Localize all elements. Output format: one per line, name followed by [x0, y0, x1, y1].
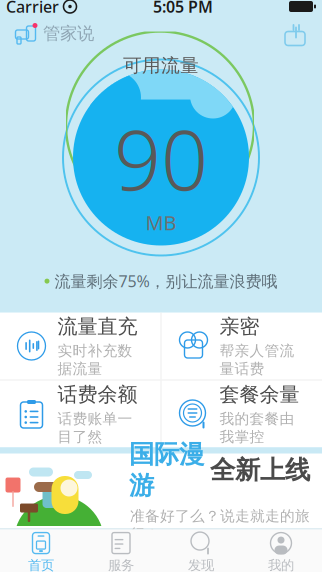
staticText: 服务 — [108, 557, 134, 572]
button[interactable]: 话费余额 — [0, 380, 160, 447]
staticText: 话费余额 — [57, 382, 137, 407]
staticText: 可用流量 — [123, 54, 199, 77]
button[interactable]: Share — [274, 18, 316, 48]
staticText: 流量直充 — [57, 314, 137, 339]
staticText: 亲密 — [219, 314, 259, 339]
staticText: 话费账单一目了然 — [57, 410, 132, 446]
button[interactable]: 发现 — [161, 529, 241, 572]
staticText: MB — [145, 209, 176, 236]
button[interactable]: 国际漫游 — [0, 453, 322, 528]
staticText: 首页 — [28, 557, 54, 572]
button[interactable]: 我的 — [241, 529, 321, 572]
staticText: Carrier — [6, 0, 59, 17]
staticText: 90 — [114, 103, 208, 213]
button[interactable]: 管家说 — [6, 18, 102, 48]
staticText: 管家说 — [43, 23, 94, 44]
staticText: 全新上线 — [210, 454, 310, 485]
button[interactable]: 首页 — [1, 529, 81, 572]
staticText — [59, 0, 63, 17]
button[interactable]: 亲密 — [161, 312, 322, 379]
staticText: 我的套餐由我掌控 — [219, 410, 294, 446]
button[interactable]: 服务 — [81, 529, 161, 572]
staticText: 帮亲人管流量话费 — [219, 342, 294, 378]
staticText: 准备好了么？说走就走的旅行！ — [130, 507, 310, 543]
staticText: 我的 — [268, 557, 294, 572]
staticText: 5:05 PM — [153, 0, 213, 17]
button[interactable]: 流量直充 — [0, 312, 160, 379]
staticText: 国际漫游 — [129, 439, 204, 501]
staticText: 实时补充数据流量 — [57, 342, 132, 378]
staticText: 套餐余量 — [219, 382, 299, 407]
button[interactable]: 套餐余量 — [161, 380, 322, 447]
staticText: 发现 — [188, 557, 214, 572]
staticText: 流量剩余75%，别让流量浪费哦 — [54, 270, 277, 292]
